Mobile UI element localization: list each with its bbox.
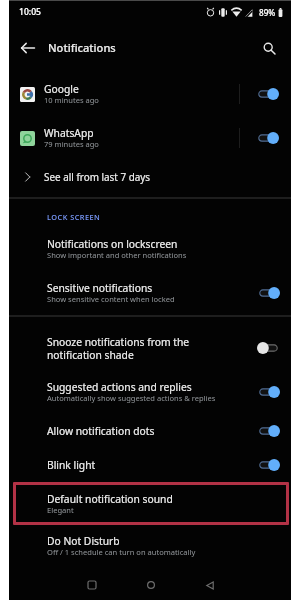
button[interactable]: On — [257, 386, 280, 398]
staticText: 89% — [259, 7, 276, 18]
staticText: Blink light — [47, 458, 96, 472]
staticText: Show important and other notifications — [47, 250, 187, 260]
staticText: Google — [44, 82, 79, 96]
staticText: See all from last 7 days — [44, 170, 151, 183]
staticText: Notifications on lockscreen — [47, 237, 178, 251]
button[interactable]: Home — [139, 573, 163, 597]
button[interactable]: On — [256, 132, 279, 144]
button[interactable]: Snooze notifications from the notificati… — [9, 326, 291, 370]
button[interactable]: Recents — [80, 573, 104, 597]
button[interactable]: Sensitive notifications — [9, 271, 291, 315]
staticText: Off / 1 schedule can turn on automatical… — [47, 547, 196, 557]
staticText: Snooze notifications from the notificati… — [47, 335, 190, 362]
button[interactable]: Google — [9, 72, 291, 116]
staticText: 79 minutes ago — [44, 139, 99, 149]
staticText: LOCK SCREEN — [47, 212, 101, 222]
button[interactable]: Back — [198, 573, 222, 597]
button[interactable]: Off — [257, 342, 280, 354]
button[interactable]: Suggested actions and replies — [9, 370, 291, 414]
staticText: Sensitive notifications — [47, 281, 153, 295]
button[interactable]: On — [257, 287, 280, 299]
button[interactable]: Allow notification dots — [9, 414, 291, 448]
staticText: Default notification sound — [47, 492, 173, 506]
staticText: Elegant — [47, 505, 74, 515]
button[interactable]: See all from last 7 days — [9, 160, 291, 193]
button[interactable]: Back — [9, 29, 47, 67]
button[interactable]: Notifications on lockscreen — [9, 227, 291, 271]
staticText: Do Not Disturb — [47, 534, 120, 548]
staticText: Show sensitive content when locked — [47, 294, 175, 304]
button[interactable]: Do Not Disturb — [9, 524, 291, 568]
button[interactable]: Search — [250, 29, 288, 67]
staticText: 10:05 — [19, 6, 42, 18]
button[interactable]: Default notification sound — [13, 482, 289, 525]
staticText: Notifications — [48, 40, 116, 55]
staticText: 10 minutes ago — [44, 95, 99, 105]
button[interactable]: Blink light — [9, 448, 291, 482]
button[interactable]: On — [257, 425, 280, 437]
button[interactable]: On — [256, 88, 279, 100]
button[interactable]: On — [257, 459, 280, 471]
staticText: Allow notification dots — [47, 424, 155, 438]
staticText: Suggested actions and replies — [47, 380, 192, 394]
staticText: WhatsApp — [44, 126, 94, 140]
button[interactable]: WhatsApp — [9, 116, 291, 160]
staticText: Automatically show suggested actions & r… — [47, 393, 216, 403]
